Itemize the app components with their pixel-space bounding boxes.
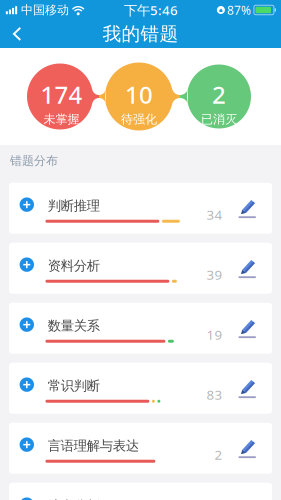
staticText: 87% <box>227 2 251 18</box>
staticText: 10 <box>125 78 153 110</box>
staticText: 2 <box>214 446 222 463</box>
staticText: 错题分布 <box>10 153 58 168</box>
staticText: 39 <box>206 266 222 283</box>
button[interactable]: Back <box>0 20 44 48</box>
button[interactable]: 资料分析 <box>9 243 272 294</box>
button[interactable]: 数量关系 <box>9 303 272 354</box>
staticText: 中国移动 <box>21 3 69 17</box>
staticText: 常识判断 <box>48 377 100 394</box>
staticText: 待强化 <box>121 112 157 127</box>
button[interactable]: 常识判断 <box>9 363 272 414</box>
staticText: 资料分析 <box>48 257 100 274</box>
staticText: 下午5:46 <box>124 1 178 19</box>
staticText: 已消灭 <box>201 112 237 127</box>
staticText: 83 <box>206 386 222 403</box>
staticText: 34 <box>206 206 222 223</box>
button[interactable]: 综合分析 <box>9 483 272 500</box>
staticText: 判断推理 <box>48 197 100 214</box>
staticText: 2 <box>212 78 226 110</box>
staticText: 19 <box>206 326 222 343</box>
staticText: 言语理解与表达 <box>48 437 139 454</box>
button[interactable]: 言语理解与表达 <box>9 423 272 474</box>
staticText: 我的错题 <box>102 22 178 45</box>
staticText: 未掌握 <box>43 112 79 127</box>
button[interactable]: 判断推理 <box>9 183 272 234</box>
staticText: 数量关系 <box>48 317 100 334</box>
staticText: 综合分析 <box>48 497 100 500</box>
staticText: 174 <box>40 78 82 110</box>
